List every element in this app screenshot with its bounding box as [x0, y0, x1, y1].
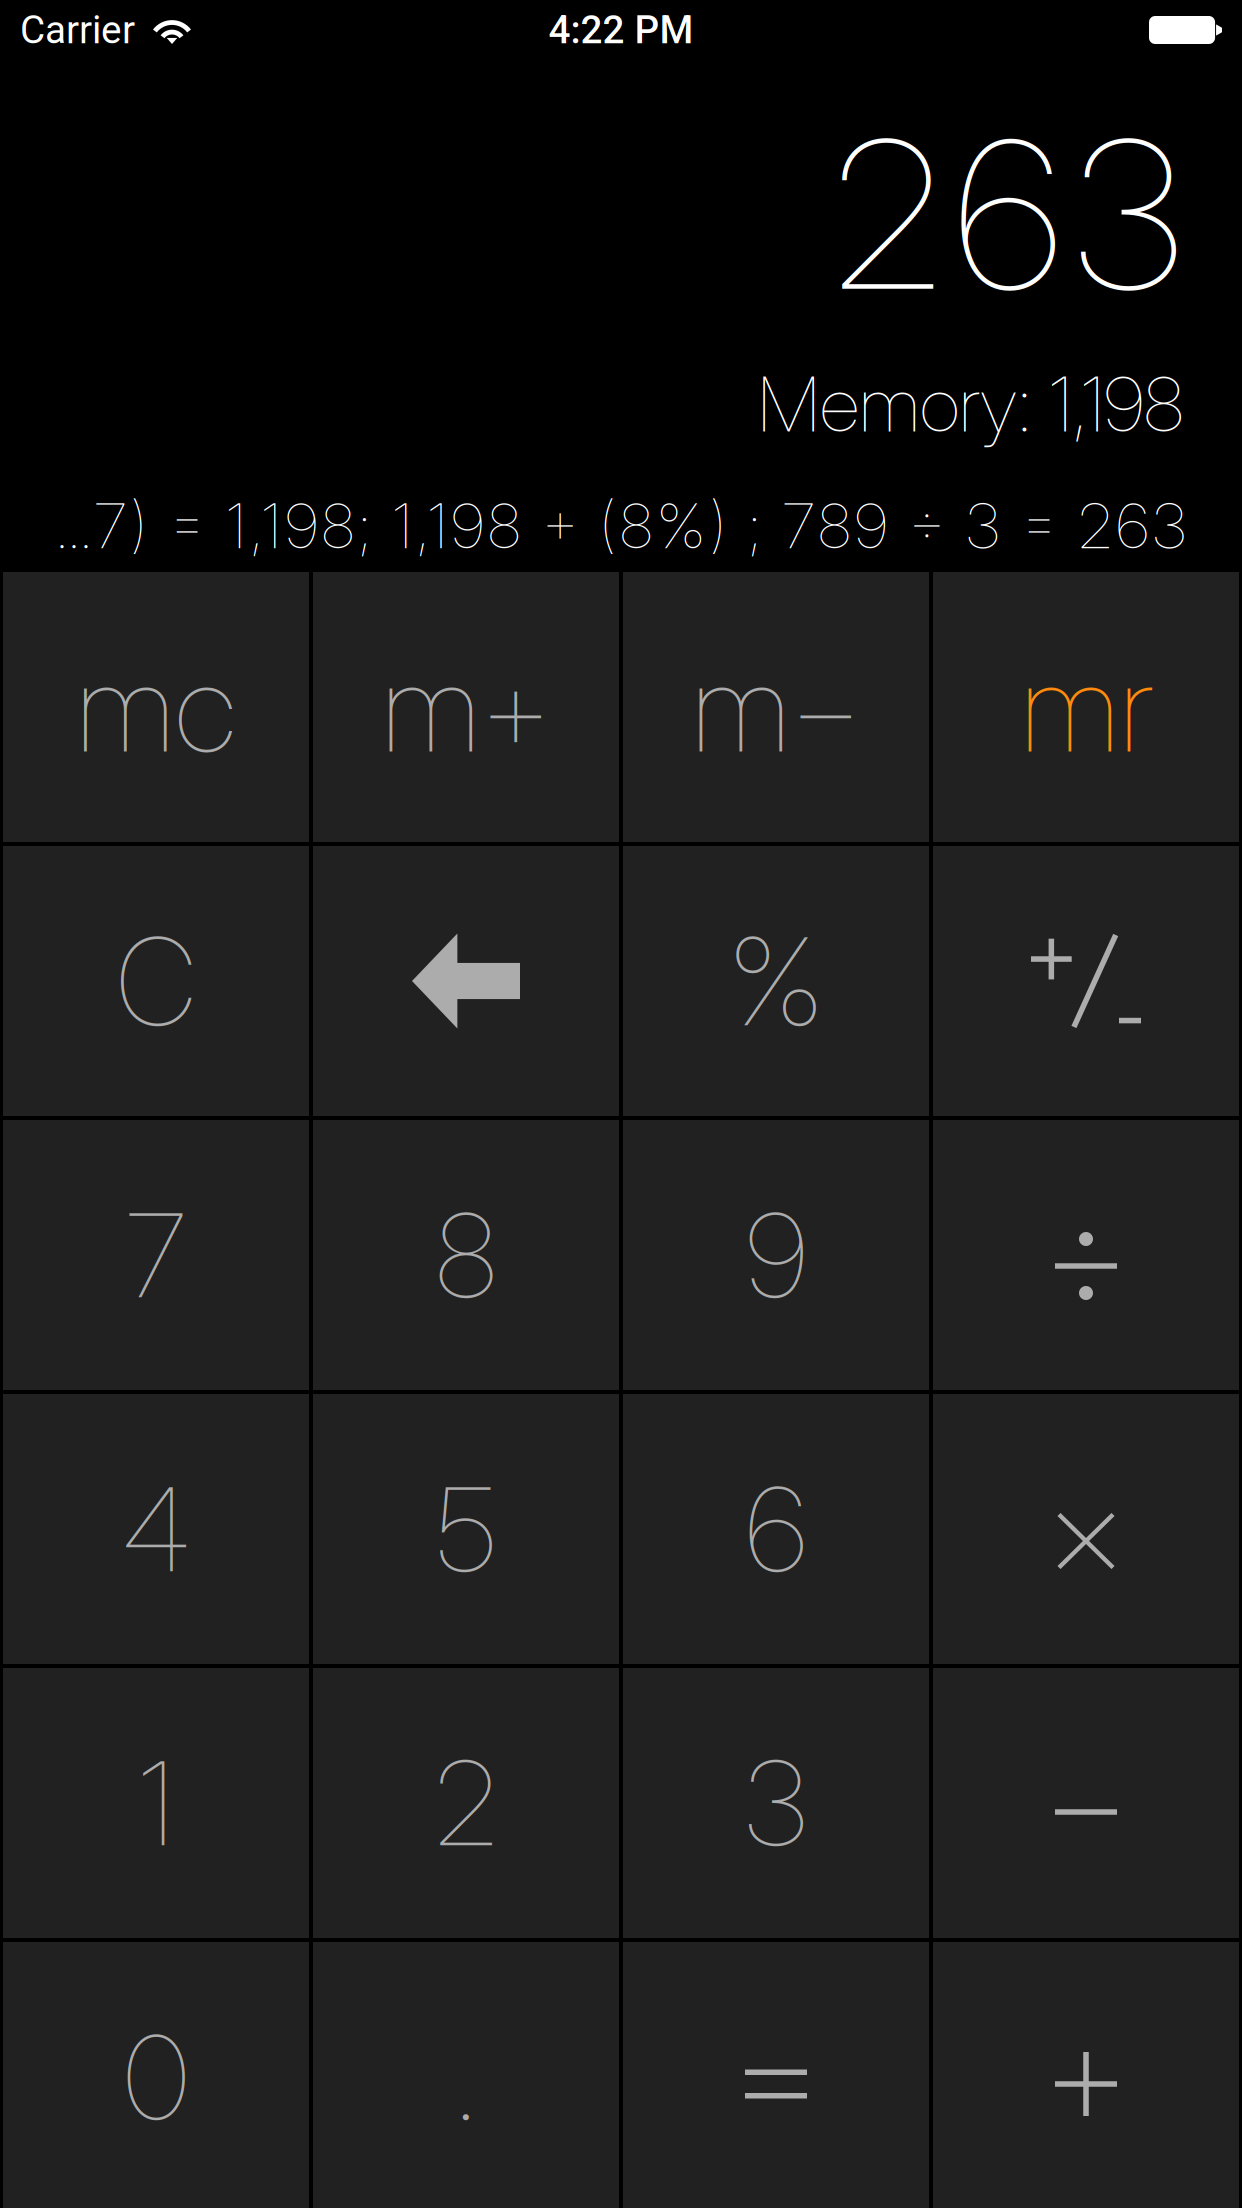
button[interactable]: 1	[3, 1668, 309, 1938]
staticText: .	[454, 2007, 477, 2147]
staticText: Carrier	[20, 7, 135, 53]
button[interactable]: 9	[623, 1120, 929, 1390]
staticText: 2	[435, 1733, 497, 1873]
button[interactable]: Subtract	[933, 1668, 1239, 1938]
button[interactable]: mr	[933, 572, 1239, 842]
button[interactable]: 3	[623, 1668, 929, 1938]
button[interactable]: 0	[3, 1942, 309, 2208]
staticText: 5	[436, 1459, 495, 1599]
staticText: 4	[122, 1459, 189, 1599]
button[interactable]: m−	[623, 572, 929, 842]
staticText: mr	[1020, 633, 1151, 781]
button[interactable]: Equals	[623, 1942, 929, 2208]
staticText: 9	[746, 1185, 806, 1325]
button[interactable]: Delete	[313, 846, 619, 1116]
button[interactable]: 8	[313, 1120, 619, 1390]
button[interactable]: Add	[933, 1942, 1239, 2208]
button[interactable]: 7	[3, 1120, 309, 1390]
staticText: 8	[436, 1185, 496, 1325]
button[interactable]: Divide	[933, 1120, 1239, 1390]
staticText: 3	[1074, 91, 1182, 338]
staticText: Memory: 1,198	[757, 358, 1183, 450]
button[interactable]: mc	[3, 572, 309, 842]
button[interactable]: 2	[313, 1668, 619, 1938]
staticText: 0	[124, 2007, 188, 2147]
staticText: 3	[745, 1733, 807, 1873]
staticText: m+	[381, 633, 550, 781]
staticText: 6	[746, 1459, 806, 1599]
staticText: 6	[955, 91, 1061, 338]
staticText: 4:22 PM	[548, 7, 693, 53]
staticText: m−	[691, 633, 860, 781]
staticText: mc	[76, 633, 236, 781]
staticText: C	[116, 908, 196, 1054]
staticText: 7	[126, 1185, 186, 1325]
staticText: 1	[138, 1733, 173, 1873]
button[interactable]: C	[3, 846, 309, 1116]
staticText: 2	[833, 91, 942, 338]
button[interactable]: 4	[3, 1394, 309, 1664]
button[interactable]: Multiply	[933, 1394, 1239, 1664]
button[interactable]: 5	[313, 1394, 619, 1664]
button[interactable]: 6	[623, 1394, 929, 1664]
button[interactable]: %	[623, 846, 929, 1116]
button[interactable]: m+	[313, 572, 619, 842]
staticText: %	[728, 908, 824, 1054]
staticText: …7) = 1,198; 1,198 + (8%) ; 789 ÷ 3 = 26…	[56, 489, 1186, 563]
button[interactable]: Toggle sign	[933, 846, 1239, 1116]
